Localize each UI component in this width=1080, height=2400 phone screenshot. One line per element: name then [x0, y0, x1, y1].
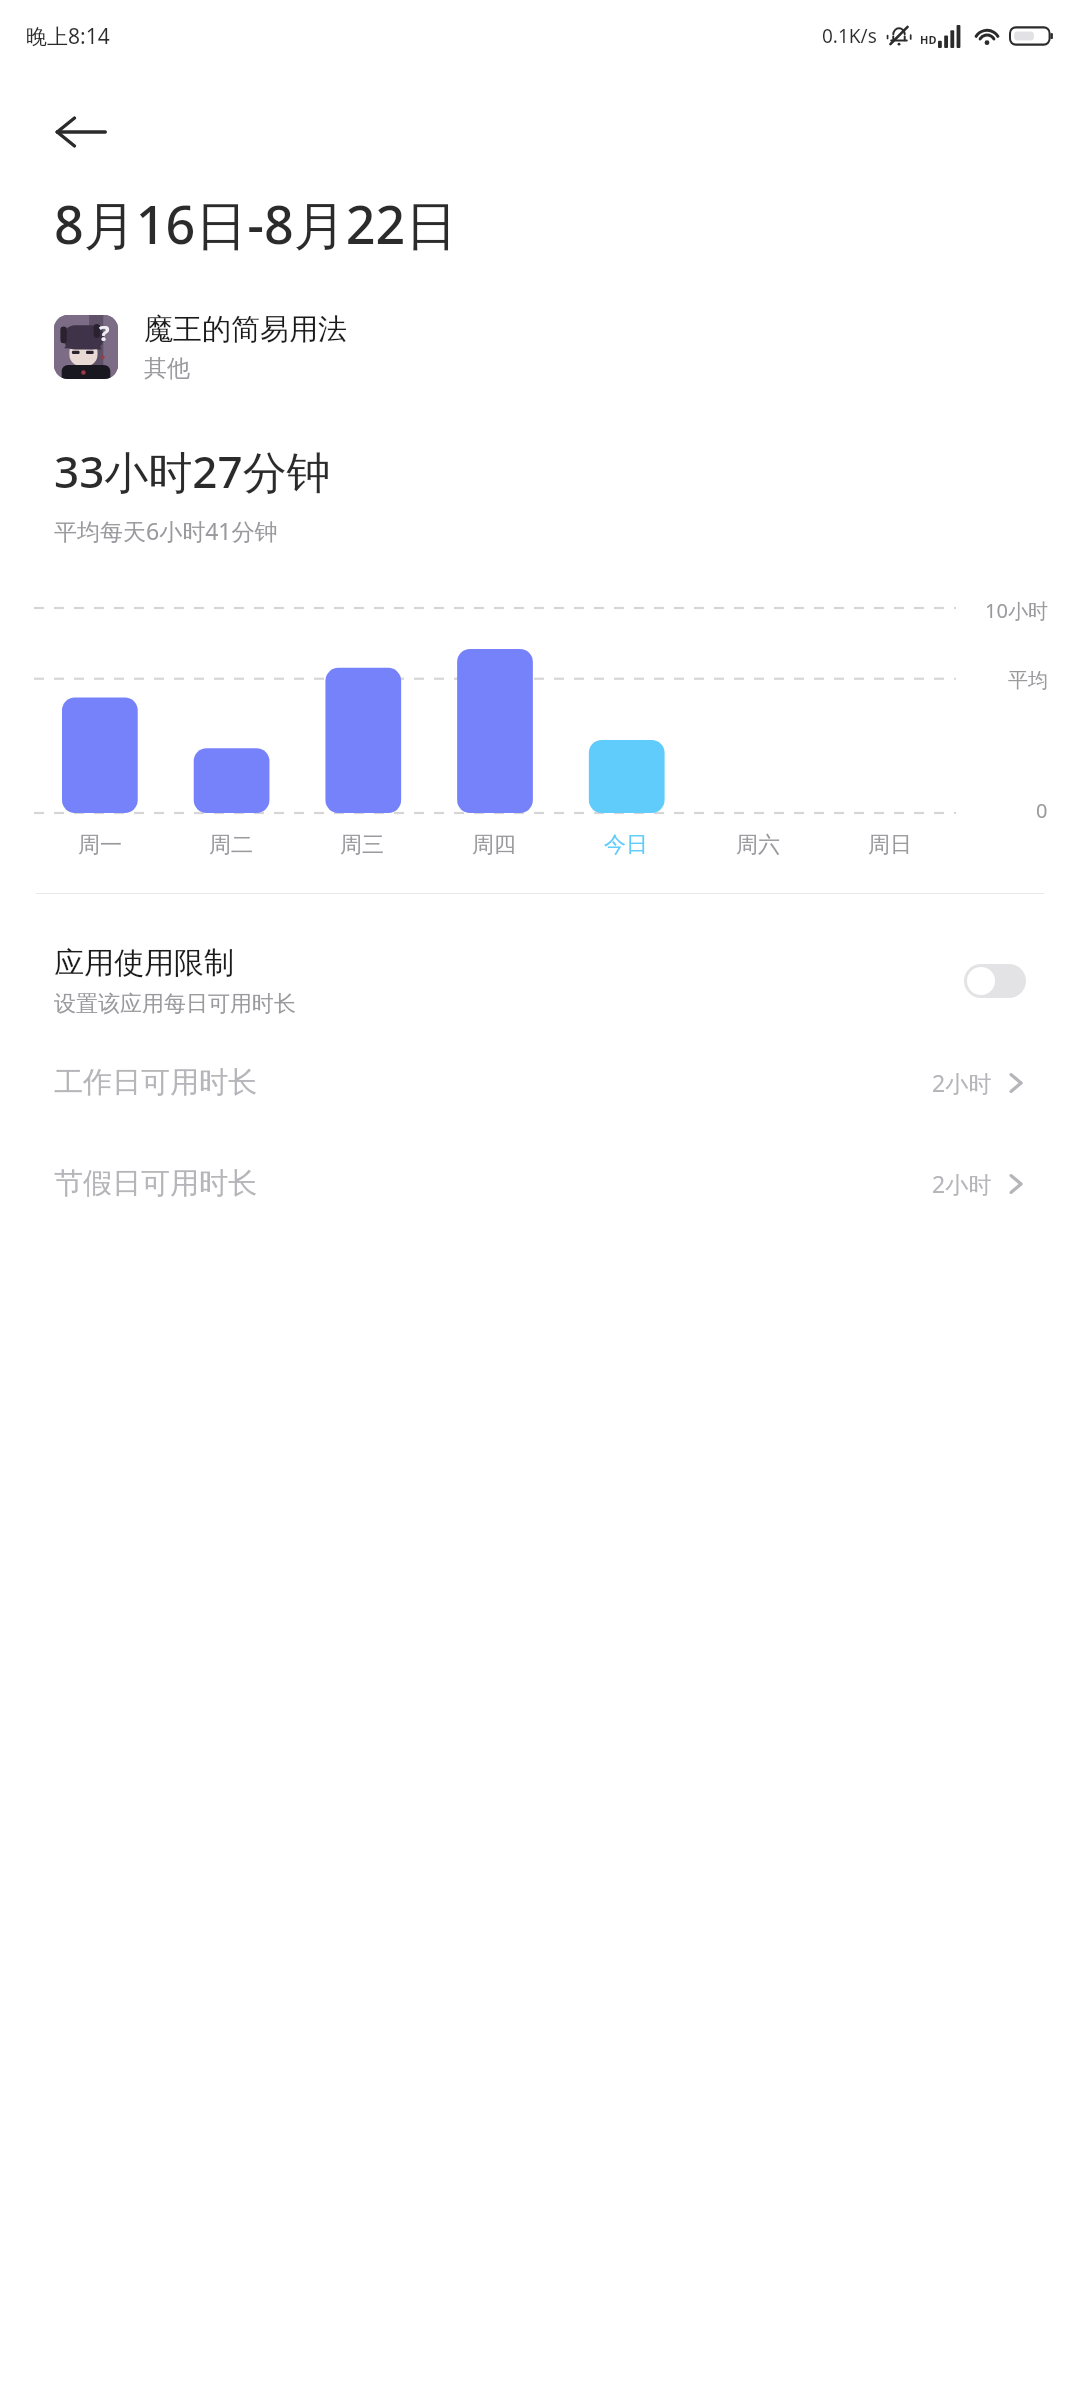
staticText: 工作日可用时长 — [54, 1064, 932, 1101]
staticText: 2小时 — [932, 1067, 992, 1098]
staticText: 33小时27分钟 — [54, 441, 331, 501]
staticText: 晚上8:14 — [26, 22, 110, 51]
staticText: 设置该应用每日可用时长 — [54, 990, 296, 1018]
staticText: 应用使用限制 — [54, 944, 234, 982]
staticText: 节假日可用时长 — [54, 1165, 932, 1202]
staticText: HD — [920, 32, 937, 47]
staticText: 周三 — [340, 831, 384, 859]
button[interactable]: ? — [54, 311, 1026, 383]
button[interactable]: Back — [54, 100, 118, 164]
button[interactable]: 应用使用限制开关 — [964, 964, 1026, 998]
staticText: 周二 — [209, 831, 253, 859]
button[interactable]: 节假日可用时长 — [36, 1151, 1044, 1216]
button[interactable]: 应用使用限制 — [36, 934, 1044, 1028]
staticText: 0.1K/s — [822, 23, 877, 49]
staticText: 10小时 — [985, 597, 1048, 624]
staticText: 周一 — [78, 831, 122, 859]
staticText: ? — [99, 317, 110, 347]
staticText: 周六 — [736, 831, 780, 859]
staticText: 8月16日-8月22日 — [54, 188, 458, 259]
staticText: 今日 — [604, 831, 648, 859]
staticText: 2小时 — [932, 1168, 992, 1199]
staticText: 魔王的简易用法 — [144, 311, 347, 348]
staticText: 周日 — [868, 831, 912, 859]
staticText: 平均每天6小时41分钟 — [54, 515, 278, 546]
staticText: 0 — [1036, 797, 1048, 824]
button[interactable]: 工作日可用时长 — [36, 1050, 1044, 1115]
staticText: 周四 — [472, 831, 516, 859]
staticText: 平均 — [1008, 668, 1048, 693]
staticText: 其他 — [144, 354, 190, 383]
